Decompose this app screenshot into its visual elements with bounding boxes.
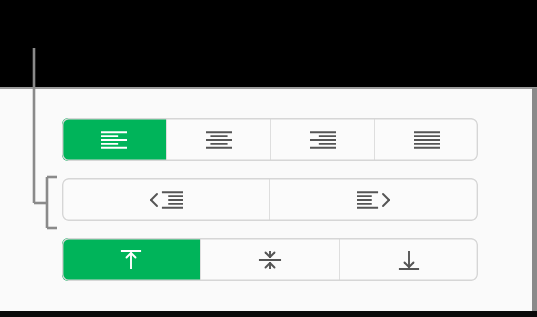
button[interactable]: Justify <box>375 118 478 161</box>
button[interactable]: Increase indent <box>270 178 478 221</box>
button[interactable]: Align bottom <box>340 238 478 281</box>
button[interactable]: Align center <box>167 118 270 161</box>
button[interactable]: Align right <box>271 118 374 161</box>
button[interactable]: Decrease indent <box>62 178 269 221</box>
button[interactable]: Align left <box>62 118 166 161</box>
button[interactable]: Align top <box>62 238 200 281</box>
button[interactable]: Align middle <box>201 238 339 281</box>
